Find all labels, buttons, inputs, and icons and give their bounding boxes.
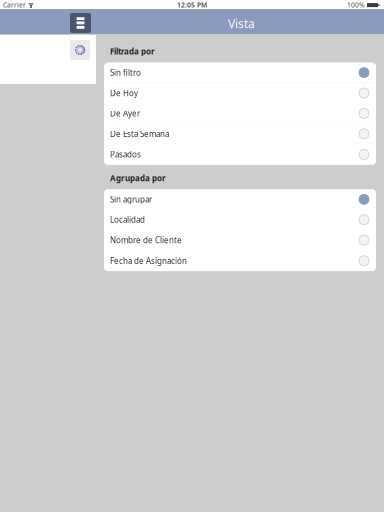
staticText: Carrier	[3, 1, 26, 9]
staticText: Vista	[228, 15, 255, 31]
staticText: 100%	[347, 1, 365, 9]
staticText: Fecha de Asignación	[110, 255, 187, 266]
button[interactable]: Fecha de Asignación	[104, 250, 376, 271]
button[interactable]: Sin filtro	[104, 63, 376, 83]
staticText: De Hoy	[110, 88, 138, 98]
button[interactable]: Pasados	[104, 144, 376, 165]
staticText: Sin agrupar	[110, 194, 152, 205]
staticText: Filtrada por	[110, 46, 155, 57]
staticText: De Ayer	[110, 108, 140, 119]
button[interactable]: Localidad	[104, 210, 376, 230]
staticText: De Esta Semana	[110, 128, 169, 139]
staticText: Localidad	[110, 214, 145, 225]
staticText: Nombre de Cliente	[110, 235, 182, 245]
button[interactable]: Nombre de Cliente	[104, 230, 376, 250]
staticText: Pasados	[110, 149, 141, 160]
staticText: 12:05 PM	[177, 1, 207, 9]
button[interactable]: Show sidebar menu	[70, 13, 91, 33]
button[interactable]: De Hoy	[104, 83, 376, 103]
button[interactable]: De Ayer	[104, 103, 376, 124]
button[interactable]: Sin agrupar	[104, 189, 376, 210]
button[interactable]: Settings	[70, 40, 90, 60]
staticText: Sin filtro	[110, 67, 141, 78]
staticText: Agrupada por	[110, 173, 166, 183]
button[interactable]: De Esta Semana	[104, 124, 376, 144]
